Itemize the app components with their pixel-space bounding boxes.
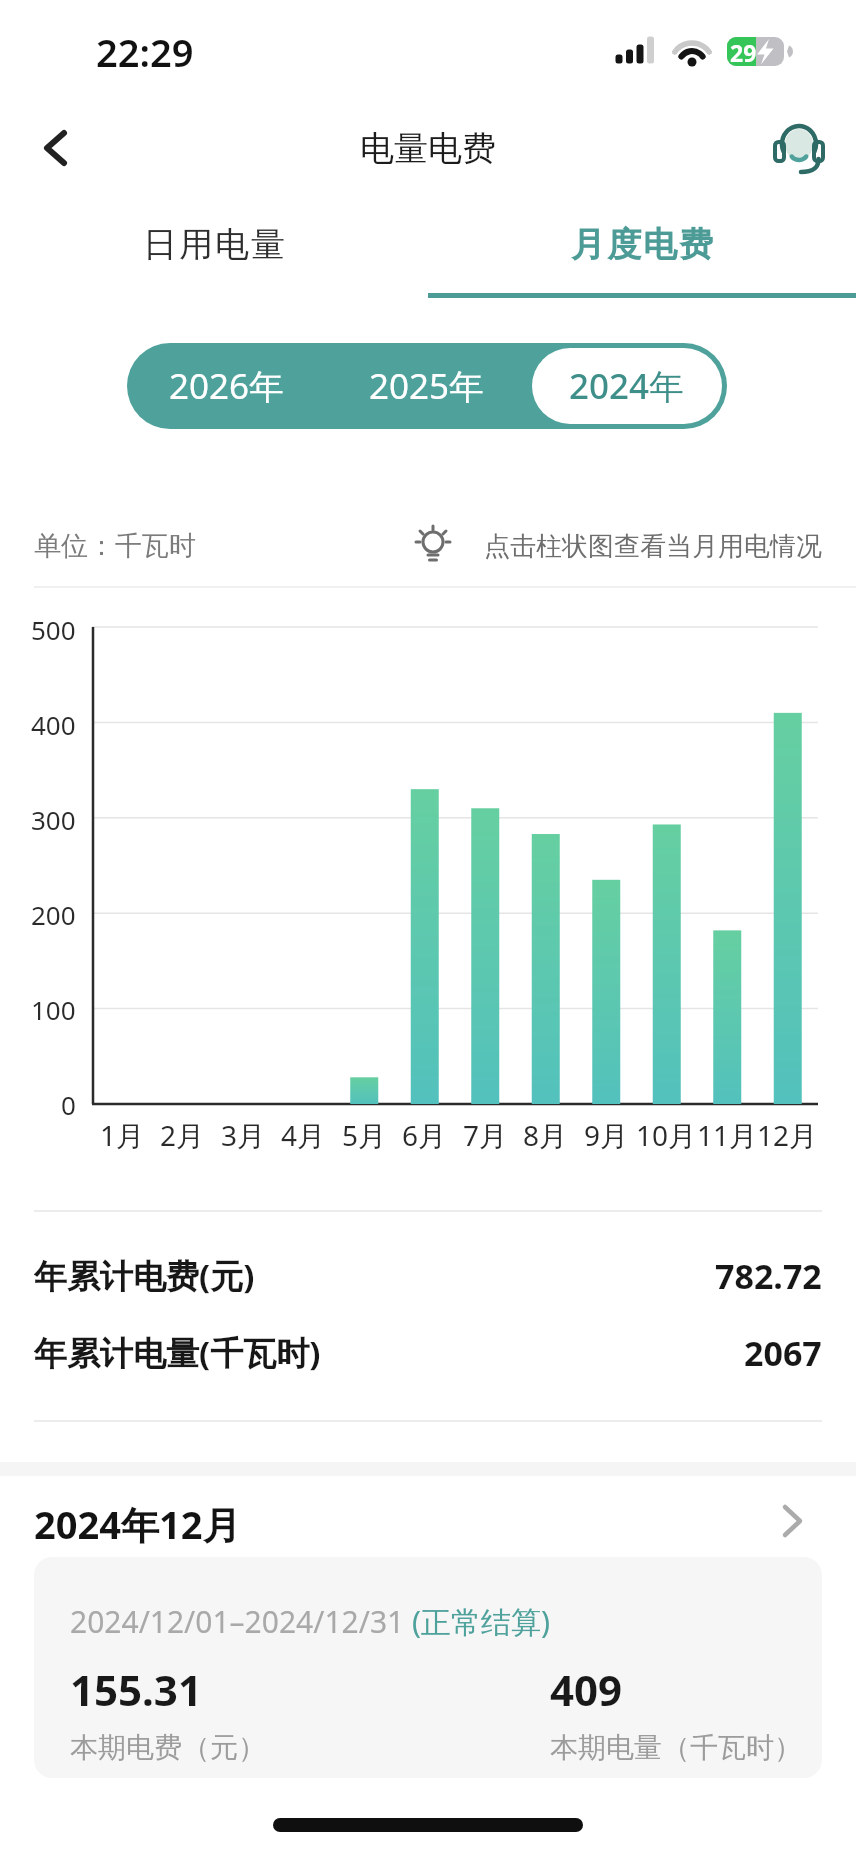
staticText: 200 [31,897,76,931]
staticText: 782.72 [715,1253,822,1297]
staticText: (正常结算) [412,1601,550,1641]
staticText: 2024年 [569,362,685,410]
button[interactable]: 2025年 [327,343,527,429]
staticText: 2024年12月 [34,1498,241,1544]
staticText: 日用电量 [142,223,286,266]
staticText: 300 [31,802,76,836]
staticText: 4月 [281,1116,326,1152]
staticText: 10月 [636,1116,697,1152]
staticText: 2067 [744,1330,822,1374]
staticText: 3月 [221,1116,266,1152]
staticText: 2025年 [369,362,485,410]
button[interactable]: 2024年 [527,343,727,429]
button[interactable]: 2024年12月 [0,1490,856,1550]
staticText: 6月 [402,1116,447,1152]
staticText: 单位：千瓦时 [34,529,196,563]
staticText: 8月 [523,1116,568,1152]
staticText: 29 [730,37,757,66]
button[interactable]: 2026年 [127,343,327,429]
staticText: 100 [31,992,76,1026]
staticText: 155.31 [70,1661,202,1711]
button[interactable]: 日用电量 [0,214,428,274]
staticText: 年累计电费(元) [34,1253,255,1297]
button[interactable]: 月度电费 [428,214,856,274]
staticText: 年累计电量(千瓦时) [34,1330,321,1374]
staticText: 本期电量（千瓦时） [550,1730,802,1765]
staticText: 12月 [757,1116,818,1152]
staticText: 1月 [100,1116,145,1152]
button[interactable] [766,116,830,180]
staticText: 7月 [463,1116,508,1152]
staticText: 0 [61,1087,76,1121]
staticText: 409 [550,1661,623,1711]
staticText: 本期电费（元） [70,1730,266,1765]
staticText: 2026年 [169,362,285,410]
staticText: 2024/12/01–2024/12/31 [70,1601,412,1641]
staticText: 5月 [342,1116,387,1152]
staticText: 11月 [697,1116,758,1152]
staticText: 月度电费 [570,223,714,266]
staticText: 点击柱状图查看当月用电情况 [484,530,822,563]
staticText: 22:29 [96,26,194,70]
button[interactable] [30,120,86,176]
button[interactable]: 2024/12/01–2024/12/31 [34,1557,822,1778]
staticText: 500 [31,612,76,646]
staticText: 400 [31,707,76,741]
staticText: 2月 [160,1116,205,1152]
staticText: 电量电费 [360,127,496,170]
staticText: 9月 [584,1116,629,1152]
